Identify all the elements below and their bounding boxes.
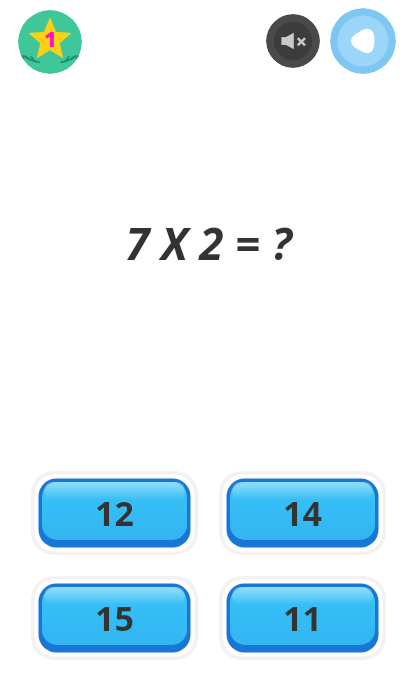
staticText: 1 — [44, 25, 57, 54]
button[interactable]: 12 — [31, 471, 198, 555]
button[interactable]: 11 — [219, 576, 386, 660]
button[interactable]: Back — [330, 8, 396, 74]
button[interactable]: 15 — [31, 576, 198, 660]
button[interactable]: 14 — [219, 471, 386, 555]
staticText: 12 — [95, 490, 134, 536]
staticText: 15 — [95, 595, 134, 641]
button[interactable]: Level 1 — [18, 10, 82, 74]
staticText: 11 — [283, 595, 322, 641]
staticText: 14 — [283, 490, 322, 536]
button[interactable]: Mute sound — [266, 14, 320, 68]
staticText: 7 X 2 = ? — [0, 213, 417, 273]
